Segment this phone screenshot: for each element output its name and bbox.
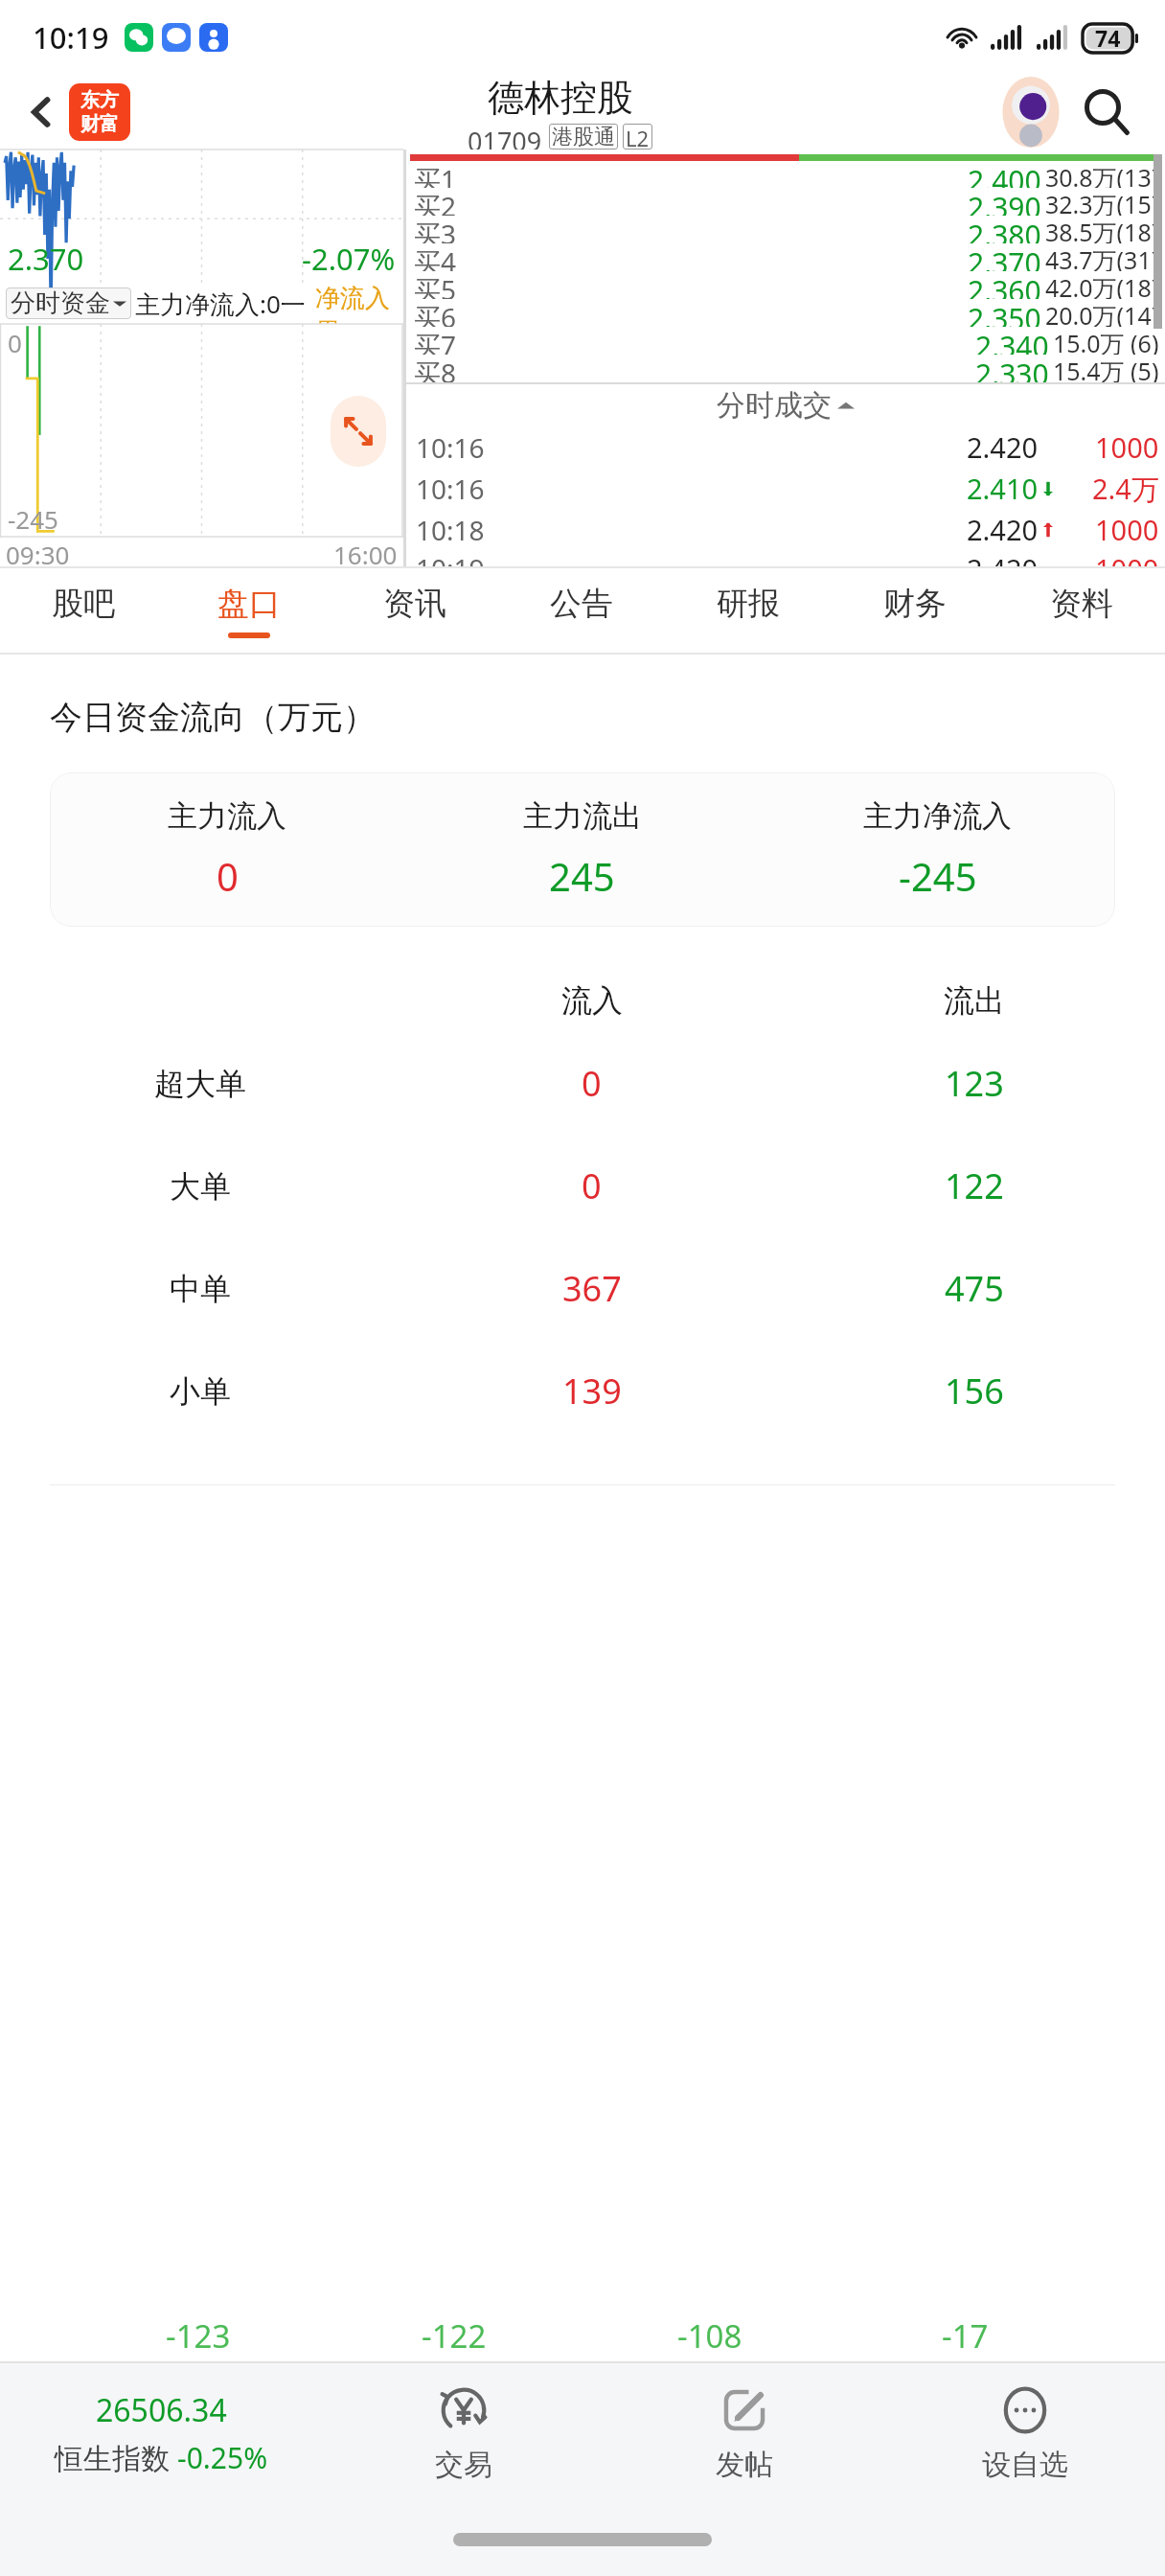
staticText: 德林控股	[488, 75, 633, 121]
button[interactable]: 买2	[406, 188, 1165, 216]
button[interactable]: 26506.34	[0, 2363, 323, 2503]
button[interactable]: 研报	[665, 568, 832, 653]
button[interactable]: 小单	[0, 1340, 1165, 1442]
staticText: 1000	[1095, 428, 1159, 466]
button[interactable]: Back	[13, 84, 69, 140]
button[interactable]: 盘口	[166, 568, 331, 653]
staticText: 今日资金流向（万元）	[50, 697, 376, 738]
button[interactable]: 公告	[498, 568, 665, 653]
button[interactable]: 资讯	[331, 568, 498, 653]
staticText: -245	[899, 850, 977, 902]
staticText: 10:19	[33, 17, 109, 57]
staticText: 367	[562, 1265, 622, 1312]
staticText: 20.0万(14)	[1045, 299, 1159, 327]
staticText: 股吧	[52, 584, 115, 624]
staticText: 475	[945, 1265, 1004, 1312]
staticText: 30.8万(13)	[1045, 161, 1159, 188]
staticText: 资讯	[383, 584, 446, 624]
button[interactable]: 交易	[323, 2363, 604, 2503]
staticText: 43.7万(31)	[1045, 243, 1159, 271]
staticText: 设自选	[982, 2447, 1068, 2483]
button[interactable]: 买8	[406, 355, 1165, 382]
staticText: 分时资金	[11, 287, 110, 319]
staticText: 10:16	[416, 471, 485, 507]
button[interactable]: 发帖	[604, 2363, 884, 2503]
button[interactable]: 大单	[0, 1135, 1165, 1237]
staticText: 2.370	[968, 243, 1041, 271]
button[interactable]: 10:16	[406, 468, 1165, 509]
button[interactable]: 中单	[0, 1237, 1165, 1340]
staticText: 2.380	[968, 216, 1041, 243]
button[interactable]: 股吧	[0, 568, 166, 653]
staticText: 买8	[414, 355, 457, 382]
staticText: 156	[945, 1368, 1004, 1414]
staticText: 买3	[414, 216, 457, 243]
staticText: 发帖	[716, 2447, 773, 2483]
staticText: 2.360	[968, 271, 1041, 299]
staticText: 大单	[170, 1167, 231, 1206]
staticText: 财务	[883, 584, 947, 624]
button[interactable]: 买1	[406, 161, 1165, 188]
staticText: 01709	[468, 124, 542, 149]
staticText: 2.370	[8, 239, 84, 279]
button[interactable]: Search	[1071, 77, 1142, 148]
staticText: 东方	[80, 88, 119, 112]
button[interactable]: 买7	[406, 327, 1165, 355]
button[interactable]: 资料	[998, 568, 1165, 653]
staticText: -2.07%	[302, 239, 396, 279]
button[interactable]: Fullscreen chart	[331, 396, 386, 467]
staticText: 盘口	[217, 584, 281, 624]
button[interactable]: 10:16	[406, 426, 1165, 468]
staticText: 主力流出	[523, 797, 642, 835]
staticText: 74	[1095, 23, 1121, 53]
staticText: -0.25%	[177, 2438, 268, 2477]
staticText: 2.420	[967, 511, 1039, 548]
staticText: 1000	[1095, 550, 1159, 566]
button[interactable]: 主力流入	[50, 772, 1115, 927]
staticText: 10:18	[416, 512, 485, 548]
staticText: 2.350	[968, 299, 1041, 327]
staticText: 流入	[561, 981, 623, 1020]
staticText: 10:19	[416, 550, 485, 566]
button[interactable]: 10:19	[406, 550, 1165, 566]
staticText: 分时成交	[717, 387, 832, 424]
staticText: 123	[945, 1060, 1004, 1107]
staticText: 15.0万 (6)	[1053, 327, 1159, 355]
staticText: 0	[8, 326, 22, 359]
button[interactable]: 买5	[406, 271, 1165, 299]
button[interactable]: 10:18	[406, 509, 1165, 550]
staticText: 16:00	[333, 538, 398, 566]
staticText: 研报	[717, 584, 780, 624]
button[interactable]: 分时资金	[11, 287, 126, 319]
staticText: 净流入累计:-245一	[315, 283, 403, 324]
staticText: 2.420	[967, 550, 1039, 566]
staticText: 2.4万	[1092, 470, 1159, 508]
staticText: 42.0万(18)	[1045, 271, 1159, 299]
staticText: L2	[626, 124, 650, 149]
staticText: 买4	[414, 243, 457, 271]
button[interactable]: 买6	[406, 299, 1165, 327]
button[interactable]: 买3	[406, 216, 1165, 243]
button[interactable]: 分时成交	[406, 384, 1165, 426]
staticText: 中单	[170, 1270, 231, 1308]
staticText: 公告	[550, 584, 613, 624]
button[interactable]: 超大单	[0, 1032, 1165, 1135]
staticText: 交易	[435, 2447, 492, 2483]
staticText: 资料	[1050, 584, 1113, 624]
staticText: 买2	[414, 188, 457, 216]
staticText: 0	[582, 1060, 602, 1107]
staticText: 245	[549, 850, 615, 902]
staticText: 买7	[414, 327, 457, 355]
button[interactable]: 买4	[406, 243, 1165, 271]
staticText: 10:16	[416, 429, 485, 466]
staticText: 2.400	[968, 161, 1041, 188]
button[interactable]: 东方	[69, 83, 130, 141]
staticText: 买1	[414, 161, 457, 188]
staticText: 26506.34	[96, 2389, 227, 2431]
button[interactable]: 设自选	[884, 2363, 1165, 2503]
staticText: 0	[217, 850, 239, 902]
staticText: 买5	[414, 271, 457, 299]
button[interactable]: AI assistant	[991, 75, 1071, 149]
staticText: 主力流入	[168, 797, 286, 835]
button[interactable]: 财务	[832, 568, 998, 653]
